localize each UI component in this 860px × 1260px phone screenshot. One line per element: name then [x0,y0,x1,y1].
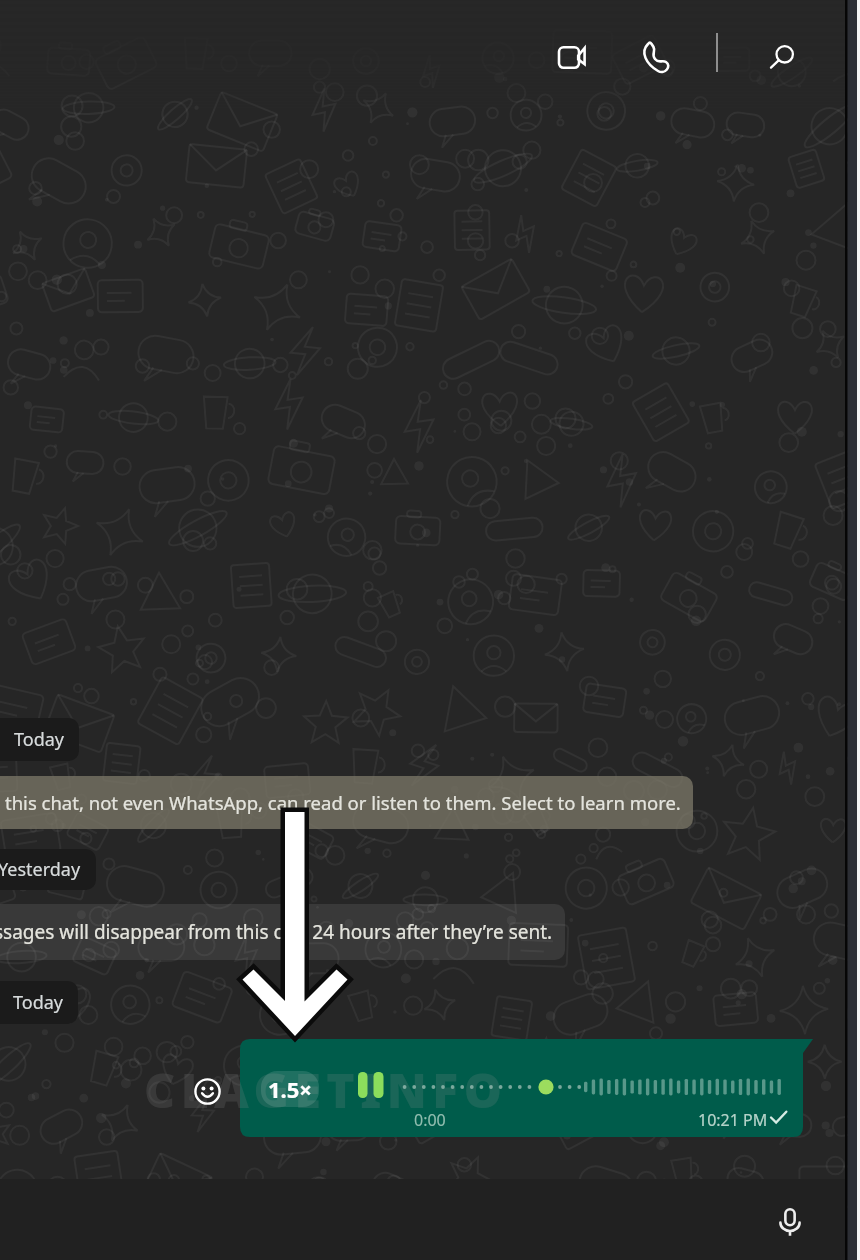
staticText: 1.5× [268,1074,312,1104]
staticText: Yesterday [0,857,81,882]
button[interactable]: Today [0,718,79,761]
button[interactable]: this chat, not even WhatsApp, can read o… [0,776,693,829]
button[interactable]: Yesterday [0,849,96,890]
button[interactable]: Pause voice message [350,1064,392,1106]
staticText: 10:21 PM [698,1109,768,1131]
button[interactable]: 1.5× [261,1071,319,1107]
staticText: this chat, not even WhatsApp, can read o… [5,790,681,815]
staticText: 0:00 [414,1109,446,1131]
button[interactable]: React [194,1078,221,1105]
button[interactable]: Search [756,28,814,86]
staticText: CLAGETINFO [144,1057,508,1122]
staticText: ssages will disappear from this c 24 hou… [0,919,553,945]
button[interactable] [240,1039,813,1137]
staticText: Today [14,727,64,752]
button[interactable]: Video call [542,28,600,86]
button[interactable]: ssages will disappear from this c 24 hou… [0,904,565,960]
button[interactable]: Record voice message [766,1198,814,1246]
button[interactable]: Today [0,981,78,1024]
button[interactable]: Voice call [630,28,688,86]
staticText: Today [13,990,63,1015]
